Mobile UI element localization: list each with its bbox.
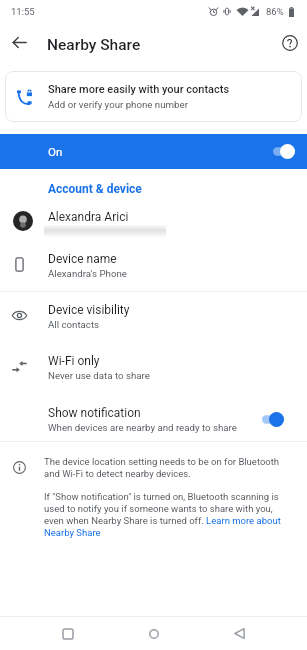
button[interactable]: Recent apps (51, 617, 85, 650)
staticText: Share more easily with your contacts (48, 83, 230, 96)
button[interactable]: On (0, 134, 307, 169)
staticText: Show notification (48, 406, 141, 420)
staticText: Alexandra's Phone (48, 268, 127, 279)
staticText: Never use data to share (48, 370, 150, 381)
staticText: Account & device (48, 182, 142, 196)
button[interactable]: Show notification (0, 398, 307, 440)
button[interactable]: Device visibility (0, 295, 307, 337)
staticText: 11:55 (11, 6, 35, 17)
staticText: Alexandra Arici (48, 210, 129, 224)
staticText: Nearby Share (47, 36, 141, 54)
staticText: Device visibility (48, 303, 130, 317)
staticText: When devices are nearby and ready to sha… (48, 422, 237, 433)
button[interactable]: Wi-Fi only (0, 346, 307, 388)
button[interactable]: Alexandra Arici (0, 196, 307, 244)
button[interactable]: Device name (0, 244, 307, 286)
staticText: All contacts (48, 319, 100, 330)
button[interactable]: Share more easily with your contacts (5, 71, 302, 122)
staticText: Wi-Fi only (48, 354, 100, 368)
staticText: The device location setting needs to be … (44, 456, 285, 479)
staticText: On (48, 145, 63, 158)
staticText: Device name (48, 252, 117, 266)
button[interactable]: Help (276, 29, 303, 56)
button[interactable]: Home (137, 617, 171, 650)
button[interactable]: Back (222, 617, 256, 650)
staticText: If "Show notification" is turned on, Blu… (44, 491, 285, 538)
staticText: Add or verify your phone number (48, 99, 188, 110)
staticText: 86% (266, 6, 284, 17)
button[interactable]: Navigate up (6, 29, 33, 56)
